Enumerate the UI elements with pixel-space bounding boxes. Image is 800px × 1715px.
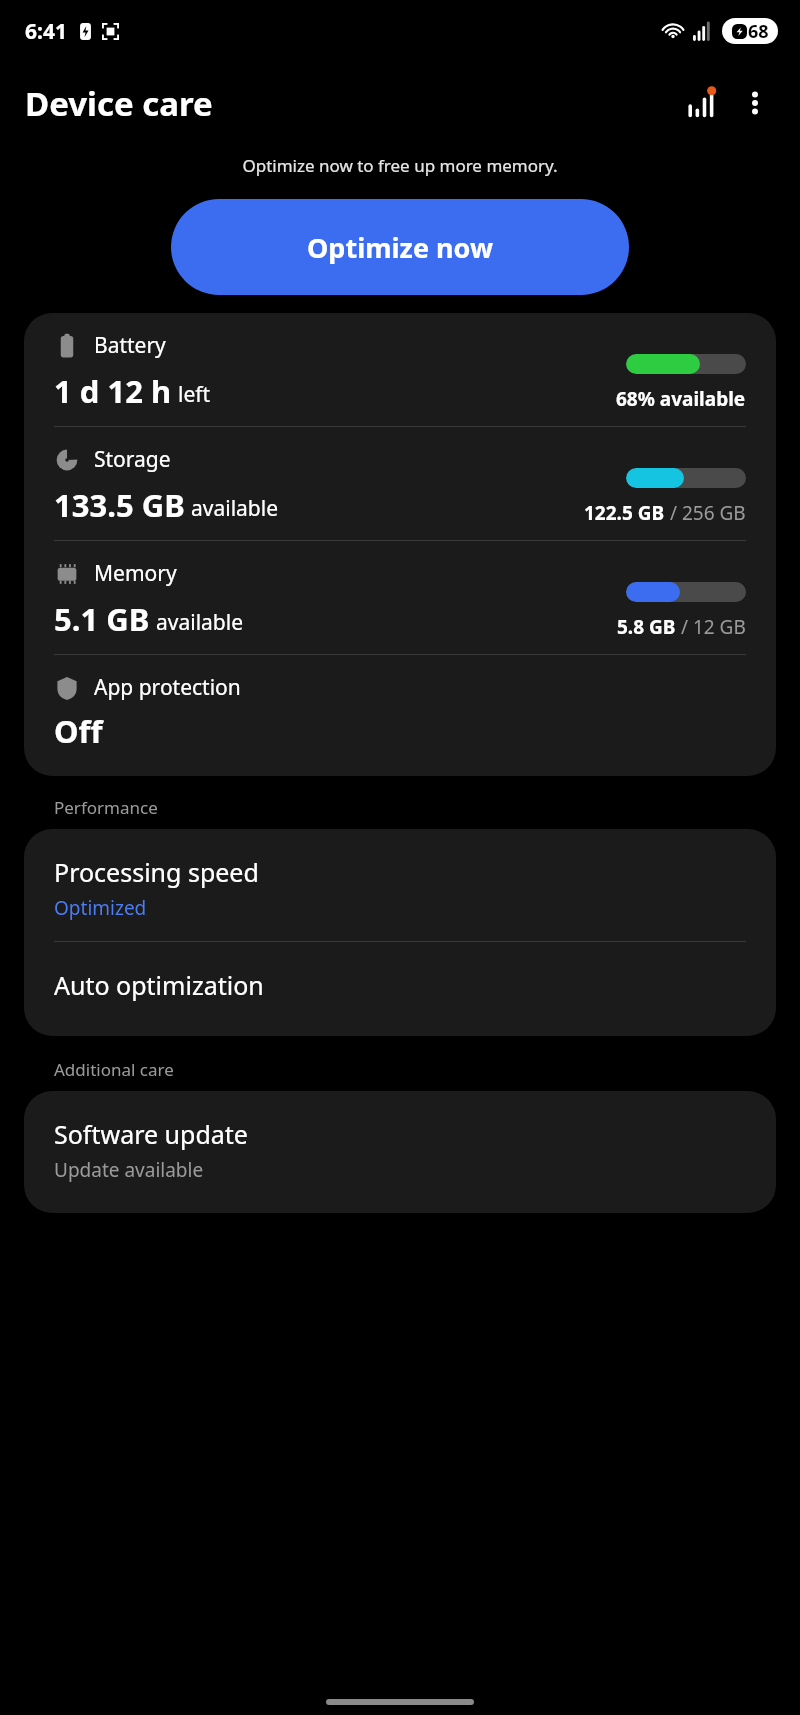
- staticText: left: [178, 380, 211, 409]
- staticText: Memory: [94, 559, 177, 588]
- staticText: Off: [54, 710, 103, 752]
- staticText: 68: [748, 19, 769, 44]
- staticText: Additional care: [54, 1058, 174, 1081]
- button[interactable]: Memory: [24, 541, 776, 654]
- staticText: Update available: [54, 1157, 204, 1183]
- button[interactable]: Auto optimization: [24, 942, 776, 1036]
- staticText: App protection: [94, 673, 241, 702]
- staticText: 5.8 GB: [617, 614, 676, 640]
- button[interactable]: App protection: [24, 655, 776, 776]
- staticText: / 256 GB: [665, 500, 746, 526]
- staticText: Performance: [54, 796, 158, 819]
- button[interactable]: Software update: [24, 1091, 776, 1213]
- staticText: 6:41: [25, 17, 67, 46]
- button[interactable]: Usage statistics: [674, 76, 728, 130]
- staticText: 1 d 12 h: [54, 370, 172, 412]
- staticText: Software update: [54, 1117, 248, 1151]
- button[interactable]: Storage: [24, 427, 776, 540]
- button[interactable]: Processing speed: [24, 829, 776, 941]
- staticText: Device care: [25, 81, 213, 126]
- staticText: Optimize now: [307, 229, 494, 266]
- staticText: available: [191, 494, 279, 523]
- staticText: Processing speed: [54, 855, 259, 889]
- staticText: Battery: [94, 331, 166, 360]
- staticText: 133.5 GB: [54, 484, 185, 526]
- staticText: Optimize now to free up more memory.: [0, 154, 800, 177]
- staticText: Storage: [94, 445, 171, 474]
- staticText: 68% available: [616, 386, 746, 412]
- button[interactable]: Optimize now: [171, 199, 629, 295]
- button[interactable]: More options: [728, 76, 782, 130]
- staticText: / 12 GB: [676, 614, 746, 640]
- staticText: Auto optimization: [54, 968, 264, 1002]
- button[interactable]: Battery: [24, 313, 776, 426]
- staticText: 5.1 GB: [54, 598, 150, 640]
- staticText: 122.5 GB: [584, 500, 665, 526]
- staticText: available: [156, 608, 244, 637]
- staticText: Optimized: [54, 895, 147, 921]
